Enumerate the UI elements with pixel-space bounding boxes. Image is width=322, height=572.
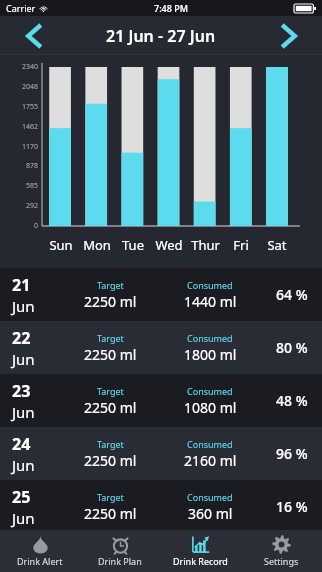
staticText: Target bbox=[97, 537, 124, 549]
staticText: Tue bbox=[122, 236, 144, 254]
staticText: Sat bbox=[267, 236, 287, 254]
staticText: 1800 ml bbox=[184, 345, 237, 364]
staticText: 2160 ml bbox=[184, 451, 237, 470]
staticText: 40 % bbox=[276, 543, 308, 562]
staticText: 23 bbox=[12, 380, 31, 402]
staticText: 80 % bbox=[276, 338, 308, 357]
staticText: Target bbox=[97, 279, 124, 291]
staticText: 0 bbox=[0, 221, 38, 231]
staticText: 900 ml bbox=[188, 550, 233, 569]
staticText: 24 bbox=[12, 433, 31, 455]
staticText: 2250 ml bbox=[84, 345, 137, 364]
staticText: Consumed bbox=[187, 332, 233, 344]
button[interactable]: Drink Plan bbox=[80, 530, 160, 572]
staticText: Drink Plan bbox=[98, 555, 142, 567]
staticText: Wed bbox=[155, 236, 183, 254]
staticText: Jun bbox=[12, 296, 35, 316]
staticText: Jun bbox=[12, 349, 35, 369]
button[interactable]: 21 bbox=[0, 268, 322, 321]
staticText: 878 bbox=[0, 161, 38, 171]
button[interactable]: 22 bbox=[0, 321, 322, 374]
staticText: 21 bbox=[12, 274, 31, 296]
staticText: 585 bbox=[0, 181, 38, 191]
staticText: Sun bbox=[49, 236, 73, 254]
button[interactable]: Previous week bbox=[16, 18, 52, 54]
staticText: Jun bbox=[12, 555, 35, 572]
staticText: Drink Alert bbox=[17, 555, 63, 567]
staticText: 2048 bbox=[0, 82, 38, 92]
button[interactable]: Settings bbox=[241, 530, 322, 572]
staticText: 292 bbox=[0, 201, 38, 211]
staticText: 2250 ml bbox=[84, 504, 137, 523]
staticText: Consumed bbox=[187, 438, 233, 450]
staticText: Carrier bbox=[6, 2, 36, 14]
staticText: 2250 ml bbox=[84, 292, 137, 311]
staticText: 21 Jun - 27 Jun bbox=[106, 25, 216, 47]
staticText: 2250 ml bbox=[84, 451, 137, 470]
button[interactable]: Drink Alert bbox=[0, 530, 80, 572]
staticText: Consumed bbox=[187, 279, 233, 291]
staticText: Target bbox=[97, 385, 124, 397]
staticText: 2250 ml bbox=[84, 550, 137, 569]
button[interactable]: Next week bbox=[270, 18, 306, 54]
staticText: 7:48 PM bbox=[154, 2, 188, 14]
staticText: Thur bbox=[191, 236, 220, 254]
staticText: Jun bbox=[12, 402, 35, 422]
staticText: 1440 ml bbox=[184, 292, 237, 311]
staticText: 1755 bbox=[0, 102, 38, 112]
button[interactable]: 23 bbox=[0, 374, 322, 427]
staticText: Target bbox=[97, 332, 124, 344]
staticText: 25 bbox=[12, 486, 31, 508]
staticText: Mon bbox=[83, 236, 111, 254]
button[interactable]: 24 bbox=[0, 427, 322, 480]
staticText: 1462 bbox=[0, 122, 38, 132]
staticText: 48 % bbox=[276, 391, 308, 410]
staticText: Consumed bbox=[187, 385, 233, 397]
staticText: 360 ml bbox=[188, 504, 233, 523]
staticText: Settings bbox=[264, 555, 299, 567]
staticText: Target bbox=[97, 438, 124, 450]
staticText: Drink Record bbox=[173, 555, 228, 567]
staticText: 16 % bbox=[276, 497, 308, 516]
staticText: Consumed bbox=[187, 491, 233, 503]
button[interactable]: Drink Record bbox=[160, 530, 241, 572]
staticText: 22 bbox=[12, 327, 31, 349]
staticText: Consumed bbox=[187, 537, 233, 549]
button[interactable]: 25 bbox=[0, 480, 322, 533]
staticText: 1170 bbox=[0, 142, 38, 152]
staticText: 2250 ml bbox=[84, 398, 137, 417]
staticText: Target bbox=[97, 491, 124, 503]
staticText: 64 % bbox=[276, 285, 308, 304]
staticText: Jun bbox=[12, 455, 35, 475]
button[interactable]: 26 bbox=[0, 533, 322, 572]
staticText: 1080 ml bbox=[184, 398, 237, 417]
staticText: 96 % bbox=[276, 444, 308, 463]
staticText: Fri bbox=[233, 236, 249, 254]
staticText: 2340 bbox=[0, 62, 38, 72]
staticText: Jun bbox=[12, 508, 35, 528]
